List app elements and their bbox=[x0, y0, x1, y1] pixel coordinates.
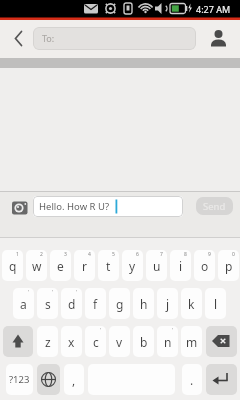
button[interactable]: s bbox=[37, 288, 58, 319]
button[interactable]: o bbox=[194, 250, 215, 281]
button[interactable]: e bbox=[50, 250, 71, 281]
button[interactable]: j bbox=[157, 288, 178, 319]
button[interactable] bbox=[206, 364, 237, 395]
staticText: 0 bbox=[232, 251, 235, 258]
staticText: 6 bbox=[136, 251, 139, 258]
staticText: u bbox=[153, 258, 161, 274]
staticText: c bbox=[93, 334, 99, 350]
staticText: ' bbox=[52, 289, 54, 296]
button[interactable]: Hello. How R U? bbox=[33, 196, 183, 217]
staticText: z bbox=[45, 334, 51, 350]
button[interactable]: Send bbox=[196, 197, 233, 215]
button[interactable]: n bbox=[157, 326, 178, 357]
staticText: b bbox=[140, 334, 148, 350]
button[interactable]: q bbox=[2, 250, 23, 281]
staticText: n bbox=[164, 334, 172, 350]
button[interactable] bbox=[206, 326, 237, 357]
staticText: 3 bbox=[64, 251, 67, 258]
staticText: v bbox=[116, 334, 123, 350]
staticText: x bbox=[68, 334, 75, 350]
staticText: o bbox=[201, 258, 209, 274]
staticText: ' bbox=[100, 327, 102, 334]
button[interactable]: b bbox=[133, 326, 154, 357]
button[interactable]: i bbox=[170, 250, 191, 281]
button[interactable]: v bbox=[109, 326, 130, 357]
staticText: g bbox=[116, 296, 124, 312]
button[interactable]: p bbox=[218, 250, 239, 281]
button[interactable]: . bbox=[182, 364, 202, 395]
staticText: 9 bbox=[208, 251, 211, 258]
staticText: w bbox=[32, 258, 42, 274]
staticText: 1 bbox=[16, 251, 19, 258]
button[interactable]: z bbox=[37, 326, 58, 357]
staticText: a bbox=[20, 296, 27, 312]
button[interactable]: d bbox=[61, 288, 82, 319]
staticText: 8 bbox=[184, 251, 187, 258]
staticText: ' bbox=[172, 327, 174, 334]
button[interactable]: ?123 bbox=[6, 364, 33, 395]
staticText: k bbox=[188, 296, 195, 312]
button[interactable]: l bbox=[205, 288, 226, 319]
staticText: i bbox=[179, 258, 183, 274]
staticText: j bbox=[166, 296, 170, 312]
button[interactable]: g bbox=[109, 288, 130, 319]
staticText: Send bbox=[203, 200, 226, 213]
button[interactable] bbox=[8, 26, 32, 52]
button[interactable]: y bbox=[122, 250, 143, 281]
staticText: f bbox=[93, 296, 98, 312]
button[interactable]: , bbox=[64, 364, 84, 395]
button[interactable]: u bbox=[146, 250, 167, 281]
button[interactable]: m bbox=[181, 326, 202, 357]
staticText: r bbox=[82, 258, 87, 274]
staticText: ' bbox=[76, 289, 78, 296]
staticText: 7 bbox=[160, 251, 163, 258]
staticText: . bbox=[190, 372, 194, 388]
staticText: ' bbox=[28, 289, 30, 296]
staticText: 5 bbox=[112, 251, 115, 258]
button[interactable] bbox=[3, 326, 33, 357]
button[interactable] bbox=[206, 25, 232, 53]
staticText: , bbox=[72, 372, 76, 388]
button[interactable]: f bbox=[85, 288, 106, 319]
staticText: y bbox=[129, 258, 136, 274]
staticText: e bbox=[57, 258, 64, 274]
button[interactable]: t bbox=[98, 250, 119, 281]
staticText: h bbox=[140, 296, 148, 312]
staticText: l bbox=[214, 296, 218, 312]
staticText: p bbox=[225, 258, 233, 274]
button[interactable]: c bbox=[85, 326, 106, 357]
button[interactable]: a bbox=[13, 288, 34, 319]
button[interactable]: w bbox=[26, 250, 47, 281]
button[interactable]: To: bbox=[33, 27, 196, 50]
staticText: 4 bbox=[88, 251, 91, 258]
staticText: t bbox=[106, 258, 111, 274]
staticText: 4:27 AM bbox=[196, 3, 231, 15]
button[interactable]: k bbox=[181, 288, 202, 319]
staticText: q bbox=[9, 258, 17, 274]
staticText: ?123 bbox=[9, 373, 30, 386]
button[interactable] bbox=[37, 364, 60, 395]
button[interactable] bbox=[10, 198, 32, 220]
button[interactable]: r bbox=[74, 250, 95, 281]
staticText: s bbox=[45, 296, 51, 312]
staticText: m bbox=[186, 334, 198, 350]
staticText: Hello. How R U? bbox=[39, 200, 110, 213]
staticText: 2 bbox=[40, 251, 43, 258]
staticText: d bbox=[68, 296, 76, 312]
staticText: To: bbox=[42, 32, 55, 44]
button[interactable]: h bbox=[133, 288, 154, 319]
button[interactable]: x bbox=[61, 326, 82, 357]
